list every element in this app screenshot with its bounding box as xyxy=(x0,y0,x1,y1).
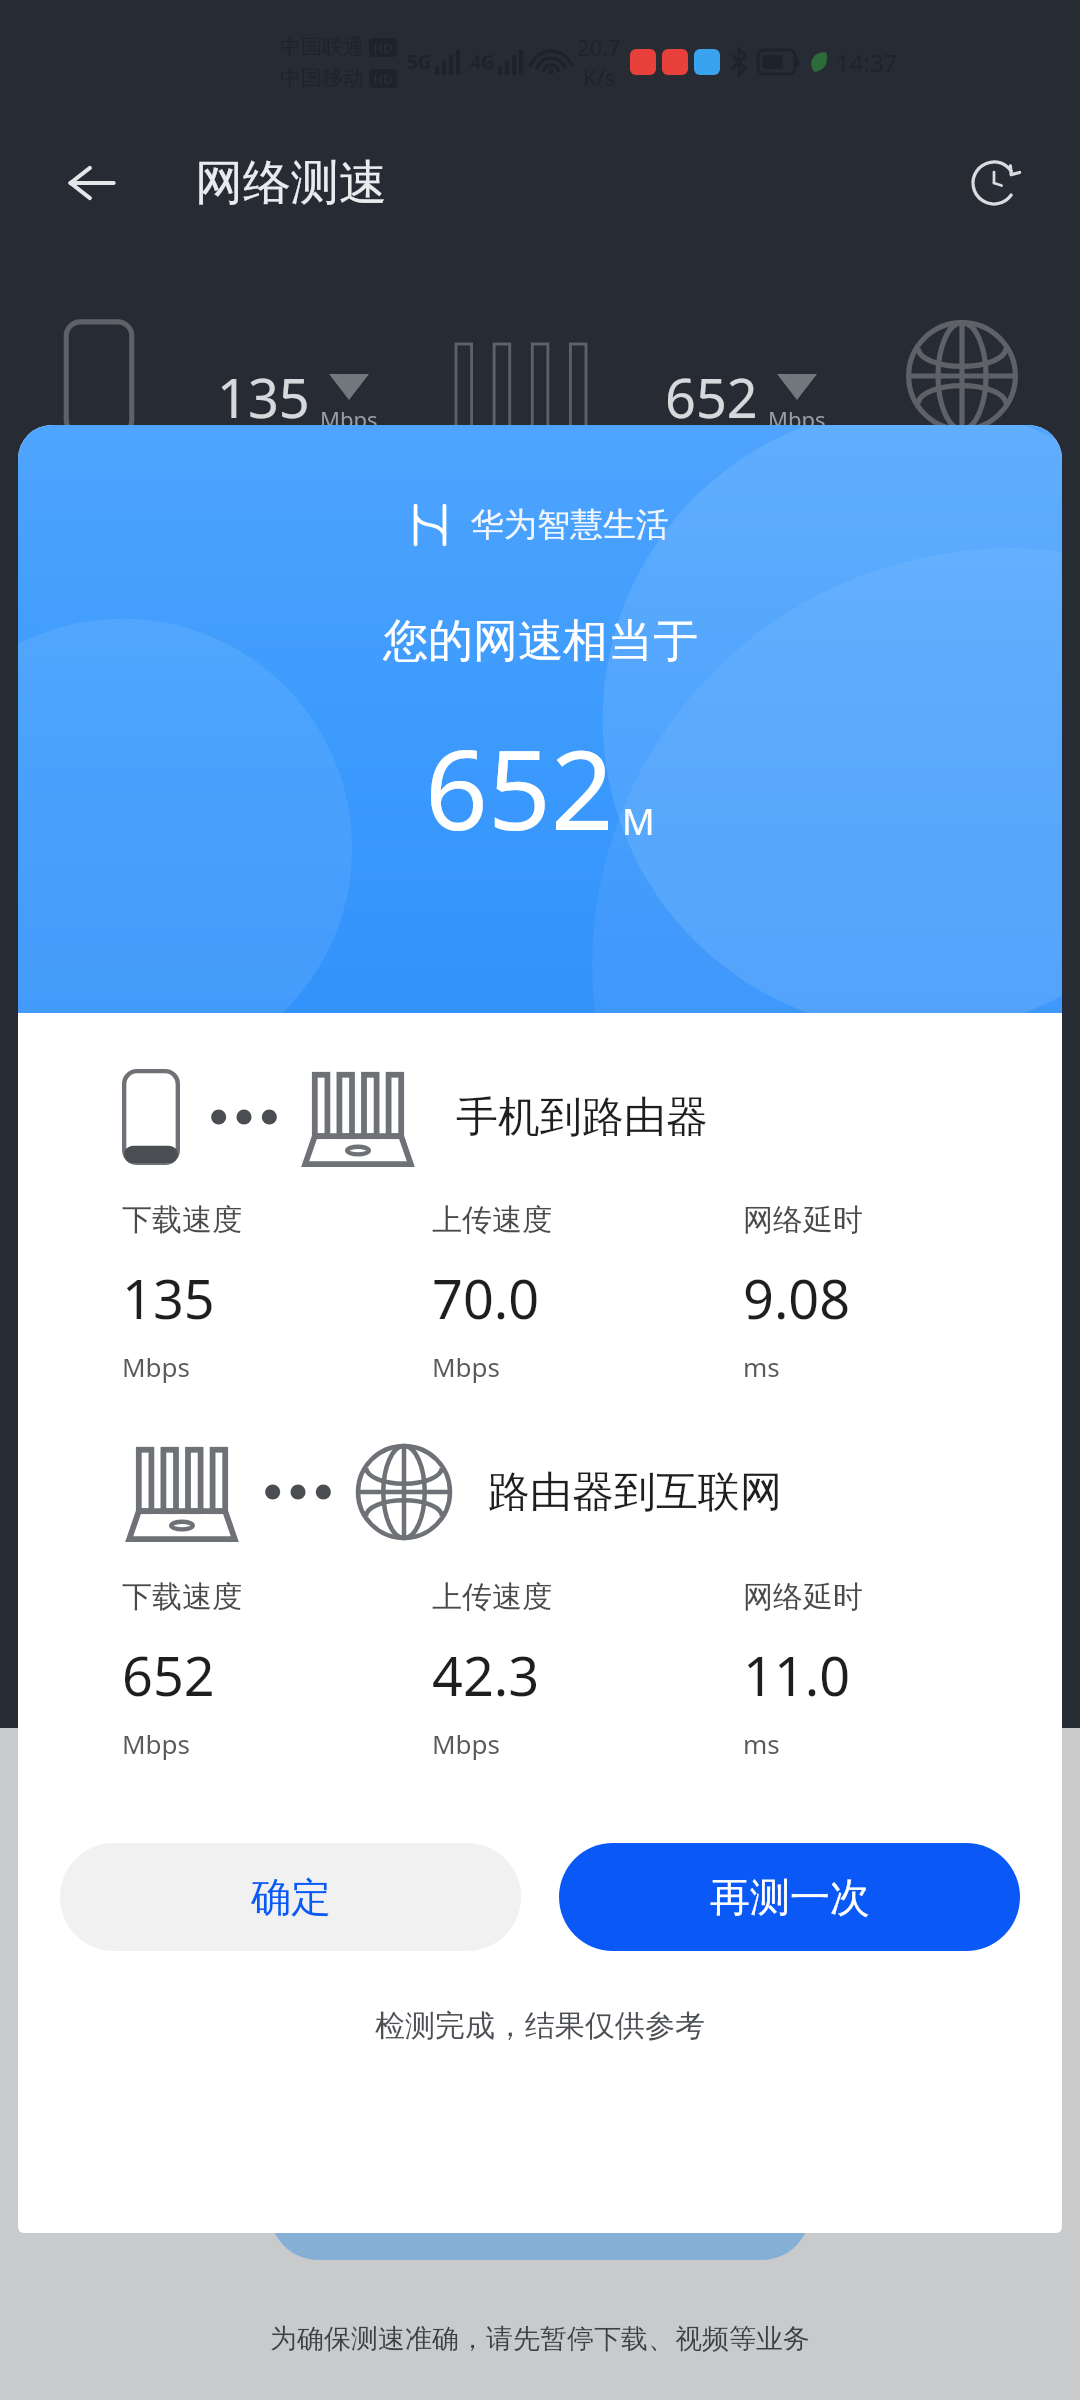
staticText: 华为智慧生活 xyxy=(471,504,669,546)
button[interactable]: 再测一次 xyxy=(559,1843,1020,1951)
staticText: 652 xyxy=(122,1638,215,1712)
staticText: M xyxy=(622,797,655,846)
staticText: 网络延时 xyxy=(743,1201,863,1239)
staticText: HD xyxy=(373,70,393,88)
button[interactable]: History xyxy=(954,143,1034,223)
staticText: 测速完成 xyxy=(472,2191,608,2234)
staticText: 11.0 xyxy=(743,1638,851,1712)
button[interactable]: Back xyxy=(48,140,134,226)
staticText: 为确保测速准确，请先暂停下载、视频等业务 xyxy=(270,2322,810,2356)
staticText: Mbps xyxy=(122,1726,191,1761)
staticText: 652 xyxy=(665,360,758,434)
staticText: HD xyxy=(373,39,393,57)
staticText: 42.3 xyxy=(432,1638,540,1712)
staticText: Mbps xyxy=(320,404,378,434)
staticText: 手机到路由器 xyxy=(456,1091,708,1144)
staticText: 确定 xyxy=(251,1872,331,1922)
staticText: 中国联通 xyxy=(280,34,364,60)
staticText: 网络测速 xyxy=(195,153,387,213)
staticText: Mbps xyxy=(768,404,826,434)
staticText: 下载速度 xyxy=(122,1201,242,1239)
staticText: 4G xyxy=(470,49,495,75)
staticText: 路由器到互联网 xyxy=(488,1466,782,1519)
staticText: ms xyxy=(743,1349,780,1384)
staticText: 652 xyxy=(425,712,614,862)
staticText: Mbps xyxy=(432,1349,501,1384)
staticText: 上传速度 xyxy=(432,1201,552,1239)
button[interactable]: 测速完成 xyxy=(270,2164,810,2260)
staticText: Mbps xyxy=(432,1726,501,1761)
staticText: 检测完成，结果仅供参考 xyxy=(18,2007,1062,2045)
staticText: 135 xyxy=(122,1261,215,1335)
staticText: 您的网速相当于 xyxy=(383,613,698,670)
staticText: 9.08 xyxy=(743,1261,851,1335)
staticText: ms xyxy=(743,1726,780,1761)
staticText: 135 xyxy=(217,360,310,434)
staticText: 5G xyxy=(407,49,432,75)
button[interactable]: 确定 xyxy=(60,1843,521,1951)
staticText: Mbps xyxy=(122,1349,191,1384)
staticText: 下载速度 xyxy=(122,1578,242,1616)
staticText: 上传速度 xyxy=(432,1578,552,1616)
staticText: 再测一次 xyxy=(710,1872,870,1922)
staticText: 70.0 xyxy=(432,1261,540,1335)
staticText: 中国移动 xyxy=(280,65,364,91)
staticText: 网络延时 xyxy=(743,1578,863,1616)
